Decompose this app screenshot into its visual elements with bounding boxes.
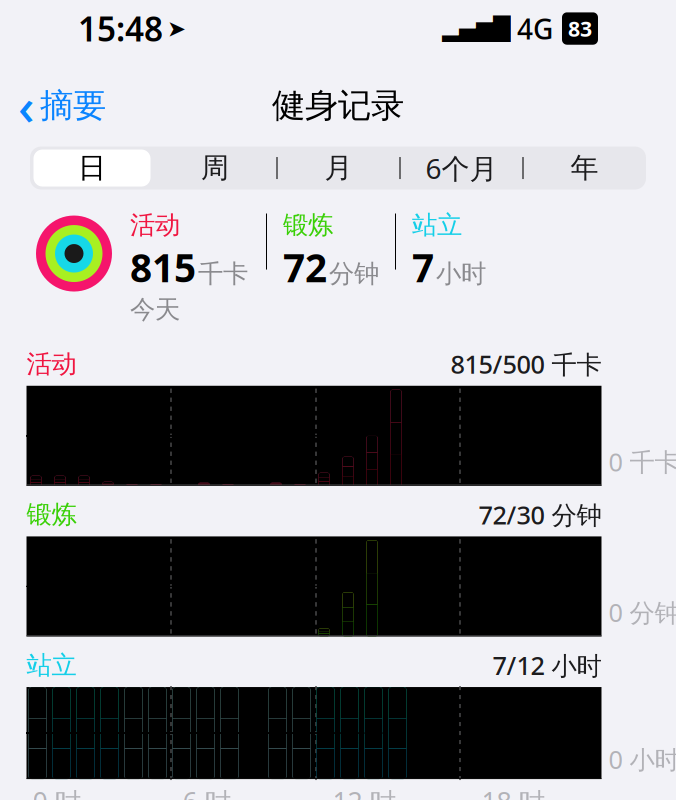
staticText: 18 时: [481, 784, 545, 800]
button[interactable]: 6个月: [400, 146, 522, 189]
staticText: 健身记录: [272, 85, 404, 126]
staticText: 6 时: [182, 784, 231, 800]
staticText: 0 小时: [608, 742, 676, 776]
staticText: 72/30 分钟: [478, 498, 601, 531]
button[interactable]: 日: [30, 146, 153, 189]
staticText: 0 时: [32, 784, 81, 800]
staticText: 815: [130, 242, 196, 293]
staticText: 15:48: [78, 6, 163, 51]
staticText: 815/500 千卡: [450, 347, 601, 381]
staticText: 7/12 小时: [492, 648, 601, 682]
staticText: 活动: [26, 348, 76, 379]
staticText: 锻炼: [283, 209, 333, 241]
button[interactable]: 月: [277, 146, 399, 189]
staticText: 72: [283, 242, 327, 293]
staticText: 站立: [412, 209, 462, 241]
button[interactable]: ‹: [0, 66, 124, 145]
staticText: 日: [78, 151, 106, 185]
button[interactable]: 年: [523, 146, 645, 189]
staticText: 摘要: [40, 85, 106, 126]
staticText: 站立: [26, 650, 76, 681]
staticText: 今天: [130, 294, 180, 325]
staticText: ➤: [167, 16, 186, 41]
staticText: 年: [570, 151, 598, 185]
staticText: 活动: [130, 209, 180, 241]
staticText: 12 时: [332, 784, 396, 800]
staticText: 千卡: [198, 258, 248, 289]
staticText: 7: [412, 242, 434, 293]
staticText: 锻炼: [26, 499, 76, 530]
staticText: 83: [568, 14, 592, 43]
staticText: 0 分钟: [608, 595, 676, 629]
staticText: ‹: [18, 72, 35, 139]
staticText: 小时: [436, 258, 486, 289]
staticText: 分钟: [329, 258, 379, 289]
button[interactable]: 周: [153, 146, 276, 189]
staticText: ▂▄▆█: [442, 16, 510, 41]
staticText: 0 千卡: [608, 445, 676, 478]
staticText: 月: [324, 151, 352, 185]
staticText: 4G: [517, 10, 553, 47]
staticText: 周: [201, 151, 229, 185]
staticText: 6个月: [425, 149, 497, 187]
